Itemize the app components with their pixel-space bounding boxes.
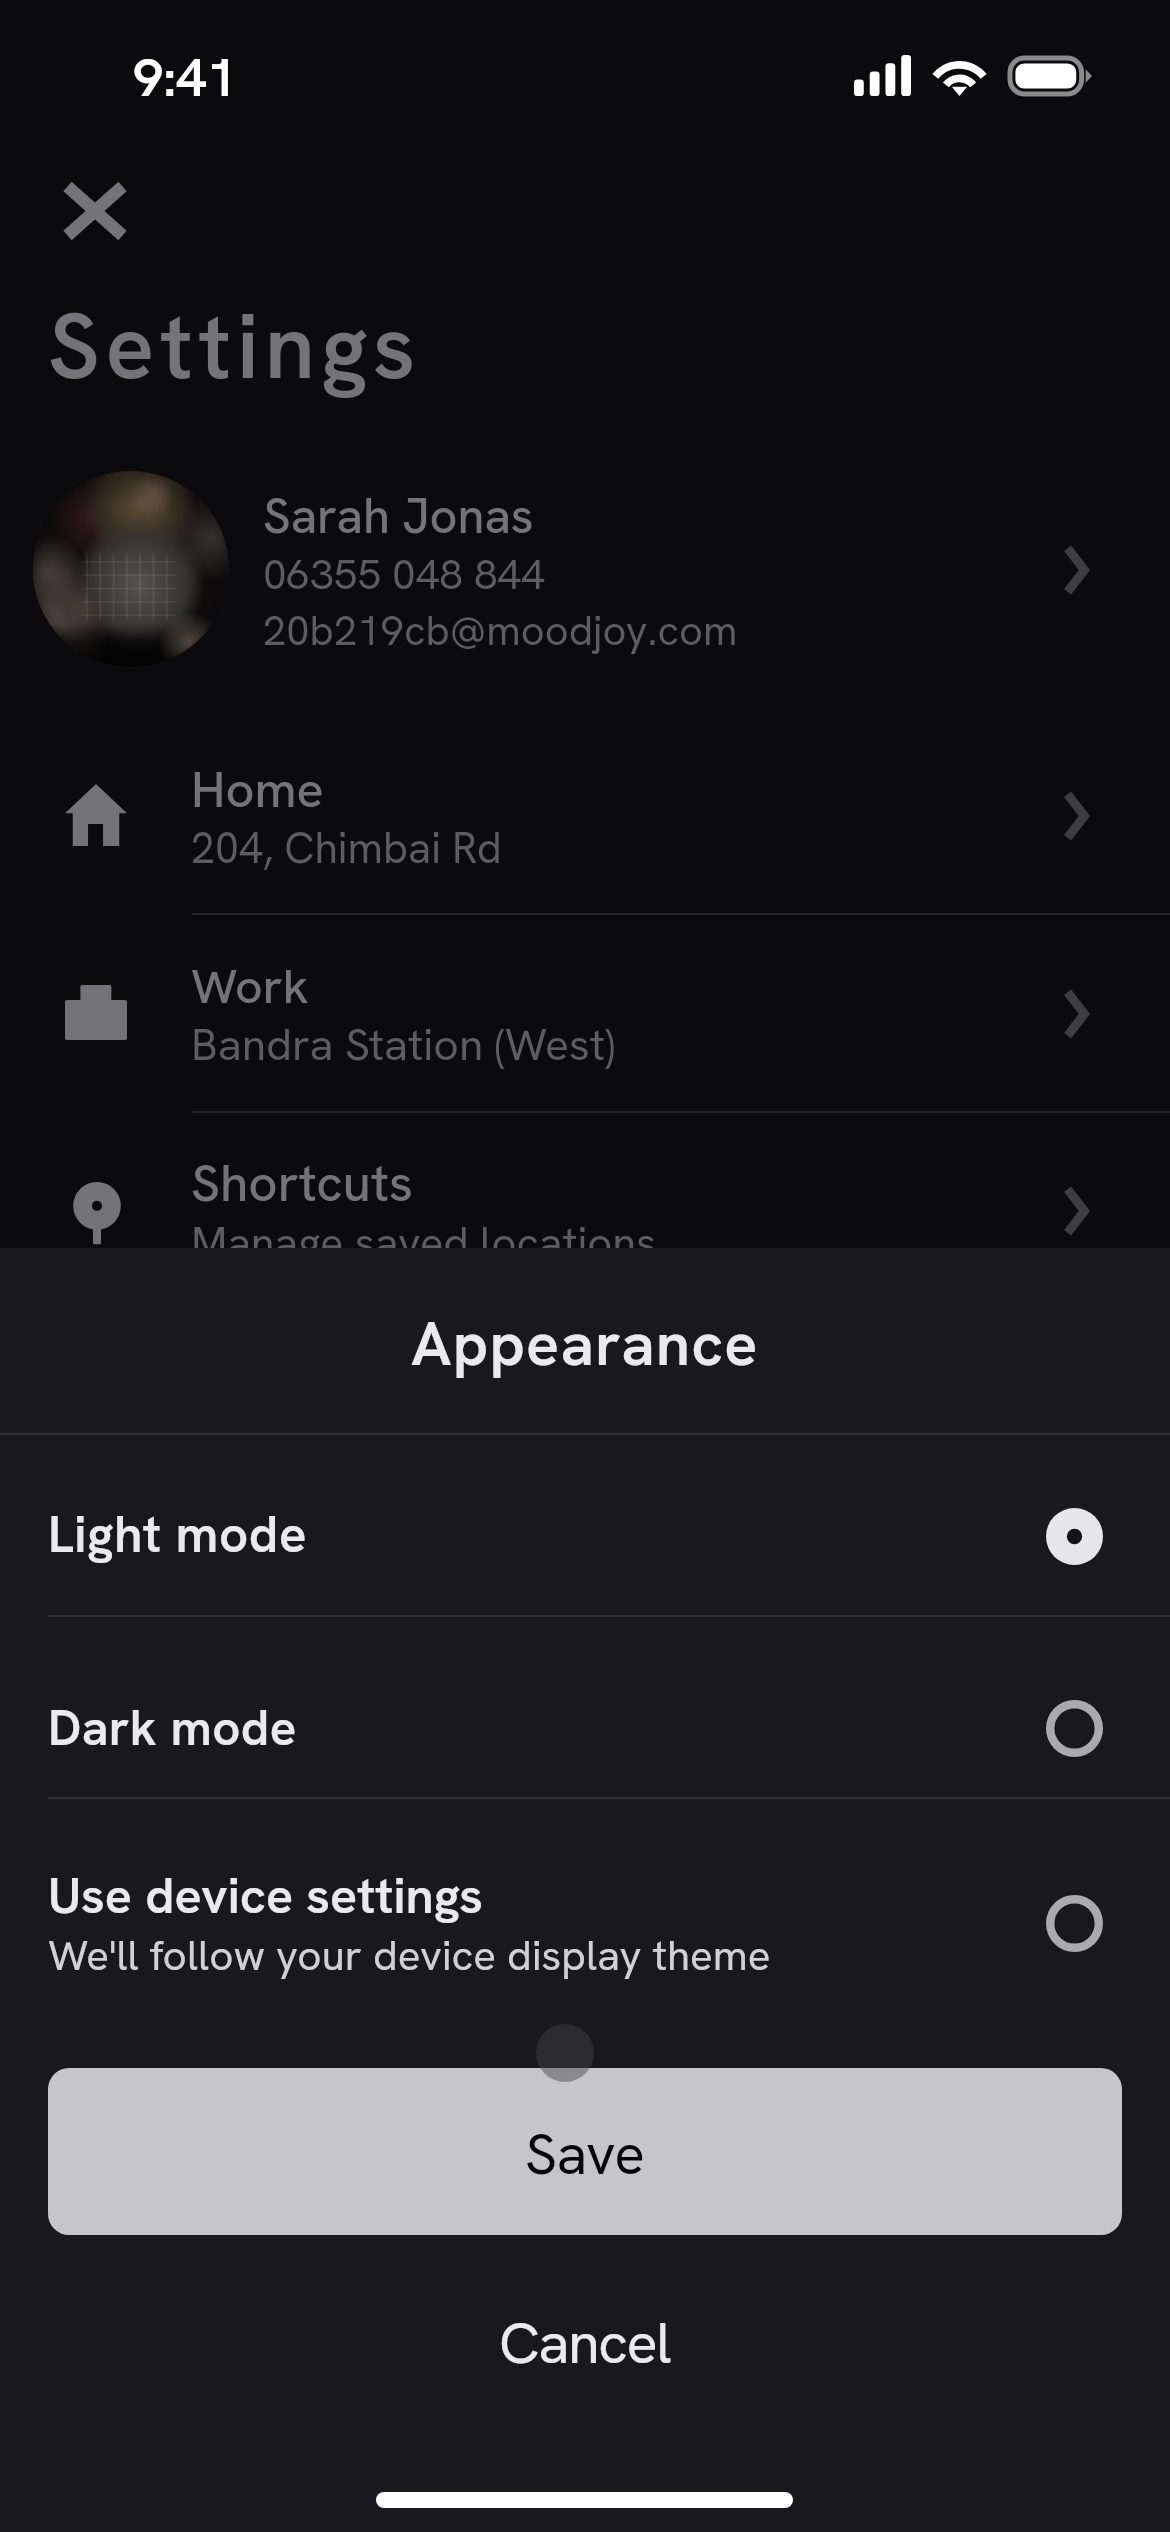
button[interactable] (0, 1433, 1170, 1615)
button[interactable] (33, 471, 229, 667)
staticText: Settings (48, 287, 422, 405)
staticText: Manage saved locations (191, 1215, 657, 1272)
staticText: 204, Chimbai Rd (191, 820, 502, 876)
staticText: Use device settings (48, 1863, 484, 1929)
staticText: We'll follow your device display theme (48, 1928, 771, 1983)
staticText: 20b219cb@moodjoy.com (263, 603, 738, 657)
staticText: Cancel (499, 2305, 671, 2381)
staticText: Sarah Jonas (263, 484, 534, 547)
button[interactable]: Cancel (0, 2268, 1170, 2422)
staticText: Shortcuts (191, 1150, 414, 1217)
button[interactable]: Close (63, 182, 127, 240)
staticText: Light mode (48, 1501, 308, 1567)
button[interactable] (0, 1617, 1170, 1797)
staticText: Bandra Station (West) (191, 1016, 615, 1074)
button[interactable]: Unselected option (1046, 1700, 1103, 1757)
staticText: 06355 048 844 (263, 547, 545, 602)
staticText: Appearance (411, 1304, 759, 1384)
staticText: Save (525, 2117, 645, 2191)
staticText: Work (191, 955, 309, 1018)
button[interactable] (0, 1799, 1170, 2009)
button[interactable]: Selected option (1046, 1508, 1103, 1565)
button[interactable]: Save (48, 2068, 1122, 2235)
staticText: Dark mode (48, 1696, 297, 1760)
staticText: 9:41 (133, 42, 238, 113)
button[interactable]: Unselected option (1046, 1895, 1103, 1952)
staticText: Home (191, 756, 324, 822)
